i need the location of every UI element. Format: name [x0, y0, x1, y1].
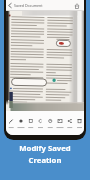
- button[interactable]: [55, 113, 65, 133]
- button[interactable]: [45, 113, 55, 133]
- button[interactable]: [75, 113, 84, 133]
- button[interactable]: [26, 113, 36, 133]
- button[interactable]: [36, 113, 46, 133]
- button[interactable]: [6, 113, 16, 133]
- staticText: Saved Document: [14, 3, 43, 8]
- button[interactable]: [6, 0, 14, 11]
- staticText: Modify Saved Creation: [0, 143, 90, 165]
- button[interactable]: [73, 2, 81, 10]
- button[interactable]: [65, 113, 75, 133]
- button[interactable]: [16, 113, 26, 133]
